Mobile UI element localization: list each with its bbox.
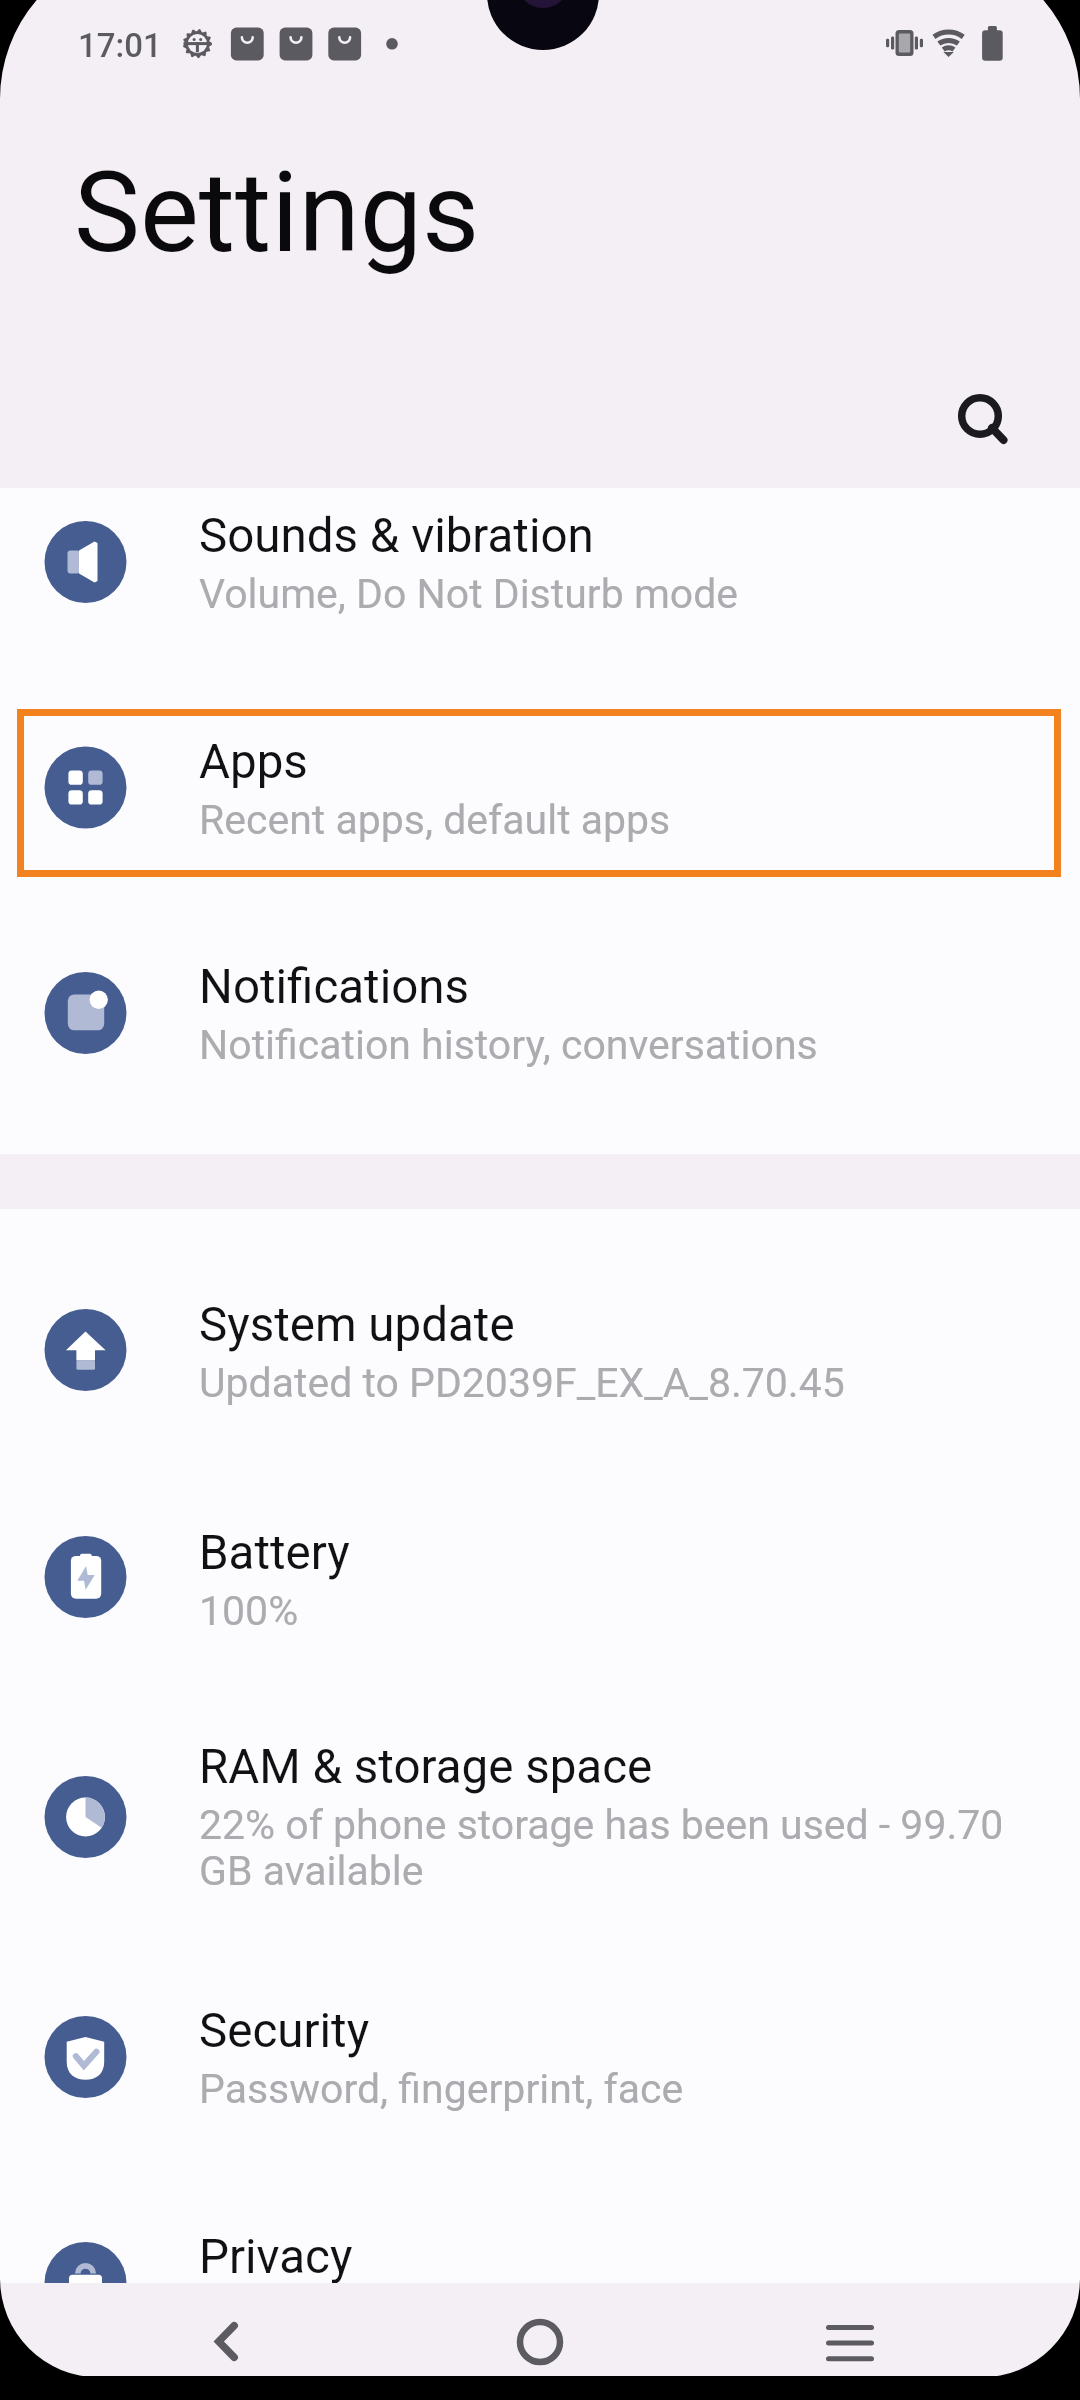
staticText: Updated to PD2039F_EX_A_8.70.45 [199,1361,1079,1407]
staticText: 100% [199,1589,1079,1635]
button[interactable]: Battery [0,1505,1080,1727]
staticText: Sounds & vibration [199,508,594,564]
button[interactable]: Back [0,2283,360,2376]
button[interactable]: Apps [0,714,1080,936]
staticText: 17:01 [78,26,162,65]
button[interactable]: Home [360,2283,720,2376]
staticText: System update [199,1297,515,1353]
staticText: Privacy [199,2229,353,2285]
button[interactable]: Notifications [0,939,1080,1161]
button[interactable]: Sounds & vibration [0,488,1080,710]
staticText: Volume, Do Not Disturb mode [199,572,1079,618]
staticText: 22% of phone storage has been used - 99.… [199,1803,1029,1895]
button[interactable]: Privacy [0,2209,1080,2400]
button[interactable]: System update [0,1277,1080,1499]
staticText: RAM & storage space [199,1739,653,1795]
staticText: Security [199,2003,370,2059]
staticText: Password, fingerprint, face [199,2067,1079,2113]
staticText: Recent apps, default apps [199,798,1079,844]
button[interactable]: Recent apps [720,2283,1080,2376]
staticText: Battery [199,1525,350,1581]
staticText: Apps [199,734,308,790]
button[interactable]: Search [920,356,1040,476]
staticText: Notification history, conversations [199,1023,1079,1069]
staticText: Location, permissions [199,2293,1079,2339]
staticText: Notifications [199,959,470,1015]
staticText: Settings [74,148,480,278]
button[interactable]: Security [0,1983,1080,2205]
button[interactable]: RAM & storage space [0,1719,1080,1981]
